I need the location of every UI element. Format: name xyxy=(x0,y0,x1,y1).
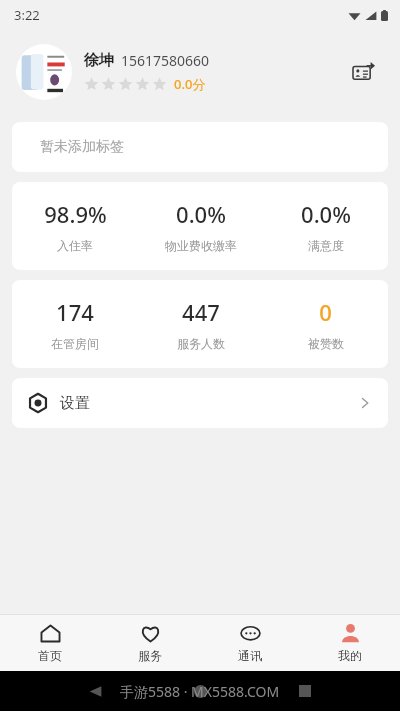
button[interactable]: 174 xyxy=(12,280,388,368)
staticText: 暂未添加标签 xyxy=(40,138,124,156)
staticText: 服务 xyxy=(138,648,162,663)
staticText: 服务人数 xyxy=(177,336,225,351)
button[interactable]: 首页 xyxy=(0,615,100,671)
staticText: 0.0% xyxy=(301,199,351,229)
staticText: 物业费收缴率 xyxy=(165,238,237,253)
staticText: 满意度 xyxy=(308,238,344,253)
staticText: 0.0分 xyxy=(174,75,206,93)
button[interactable]: 暂未添加标签 xyxy=(12,122,388,172)
staticText: 被赞数 xyxy=(308,336,344,351)
button[interactable]: Back xyxy=(85,681,105,701)
button[interactable]: 设置 xyxy=(12,378,388,428)
staticText: 设置 xyxy=(60,394,90,413)
button[interactable]: Avatar xyxy=(16,44,72,100)
staticText: 徐坤 xyxy=(84,51,114,70)
staticText: 在管房间 xyxy=(51,336,99,351)
button[interactable]: Recents xyxy=(295,681,315,701)
staticText: 0 xyxy=(319,297,332,327)
button[interactable]: Share contact xyxy=(344,52,384,92)
button[interactable]: 通讯 xyxy=(200,615,300,671)
staticText: 首页 xyxy=(38,648,62,663)
staticText: 0.0% xyxy=(176,199,226,229)
button[interactable]: Home xyxy=(190,681,210,701)
staticText: 通讯 xyxy=(238,648,262,663)
staticText: 98.9% xyxy=(44,199,107,229)
button[interactable]: 服务 xyxy=(100,615,200,671)
staticText: 入住率 xyxy=(57,238,93,253)
staticText: 174 xyxy=(56,297,94,327)
staticText: 3:22 xyxy=(14,6,40,24)
button[interactable]: 98.9% xyxy=(12,182,388,270)
staticText: 447 xyxy=(182,297,220,327)
button[interactable]: 我的 xyxy=(300,615,400,671)
staticText: 15617580660 xyxy=(121,51,210,70)
staticText: 我的 xyxy=(338,648,362,663)
staticText: 手游5588 · MX5588.COM xyxy=(120,682,280,701)
